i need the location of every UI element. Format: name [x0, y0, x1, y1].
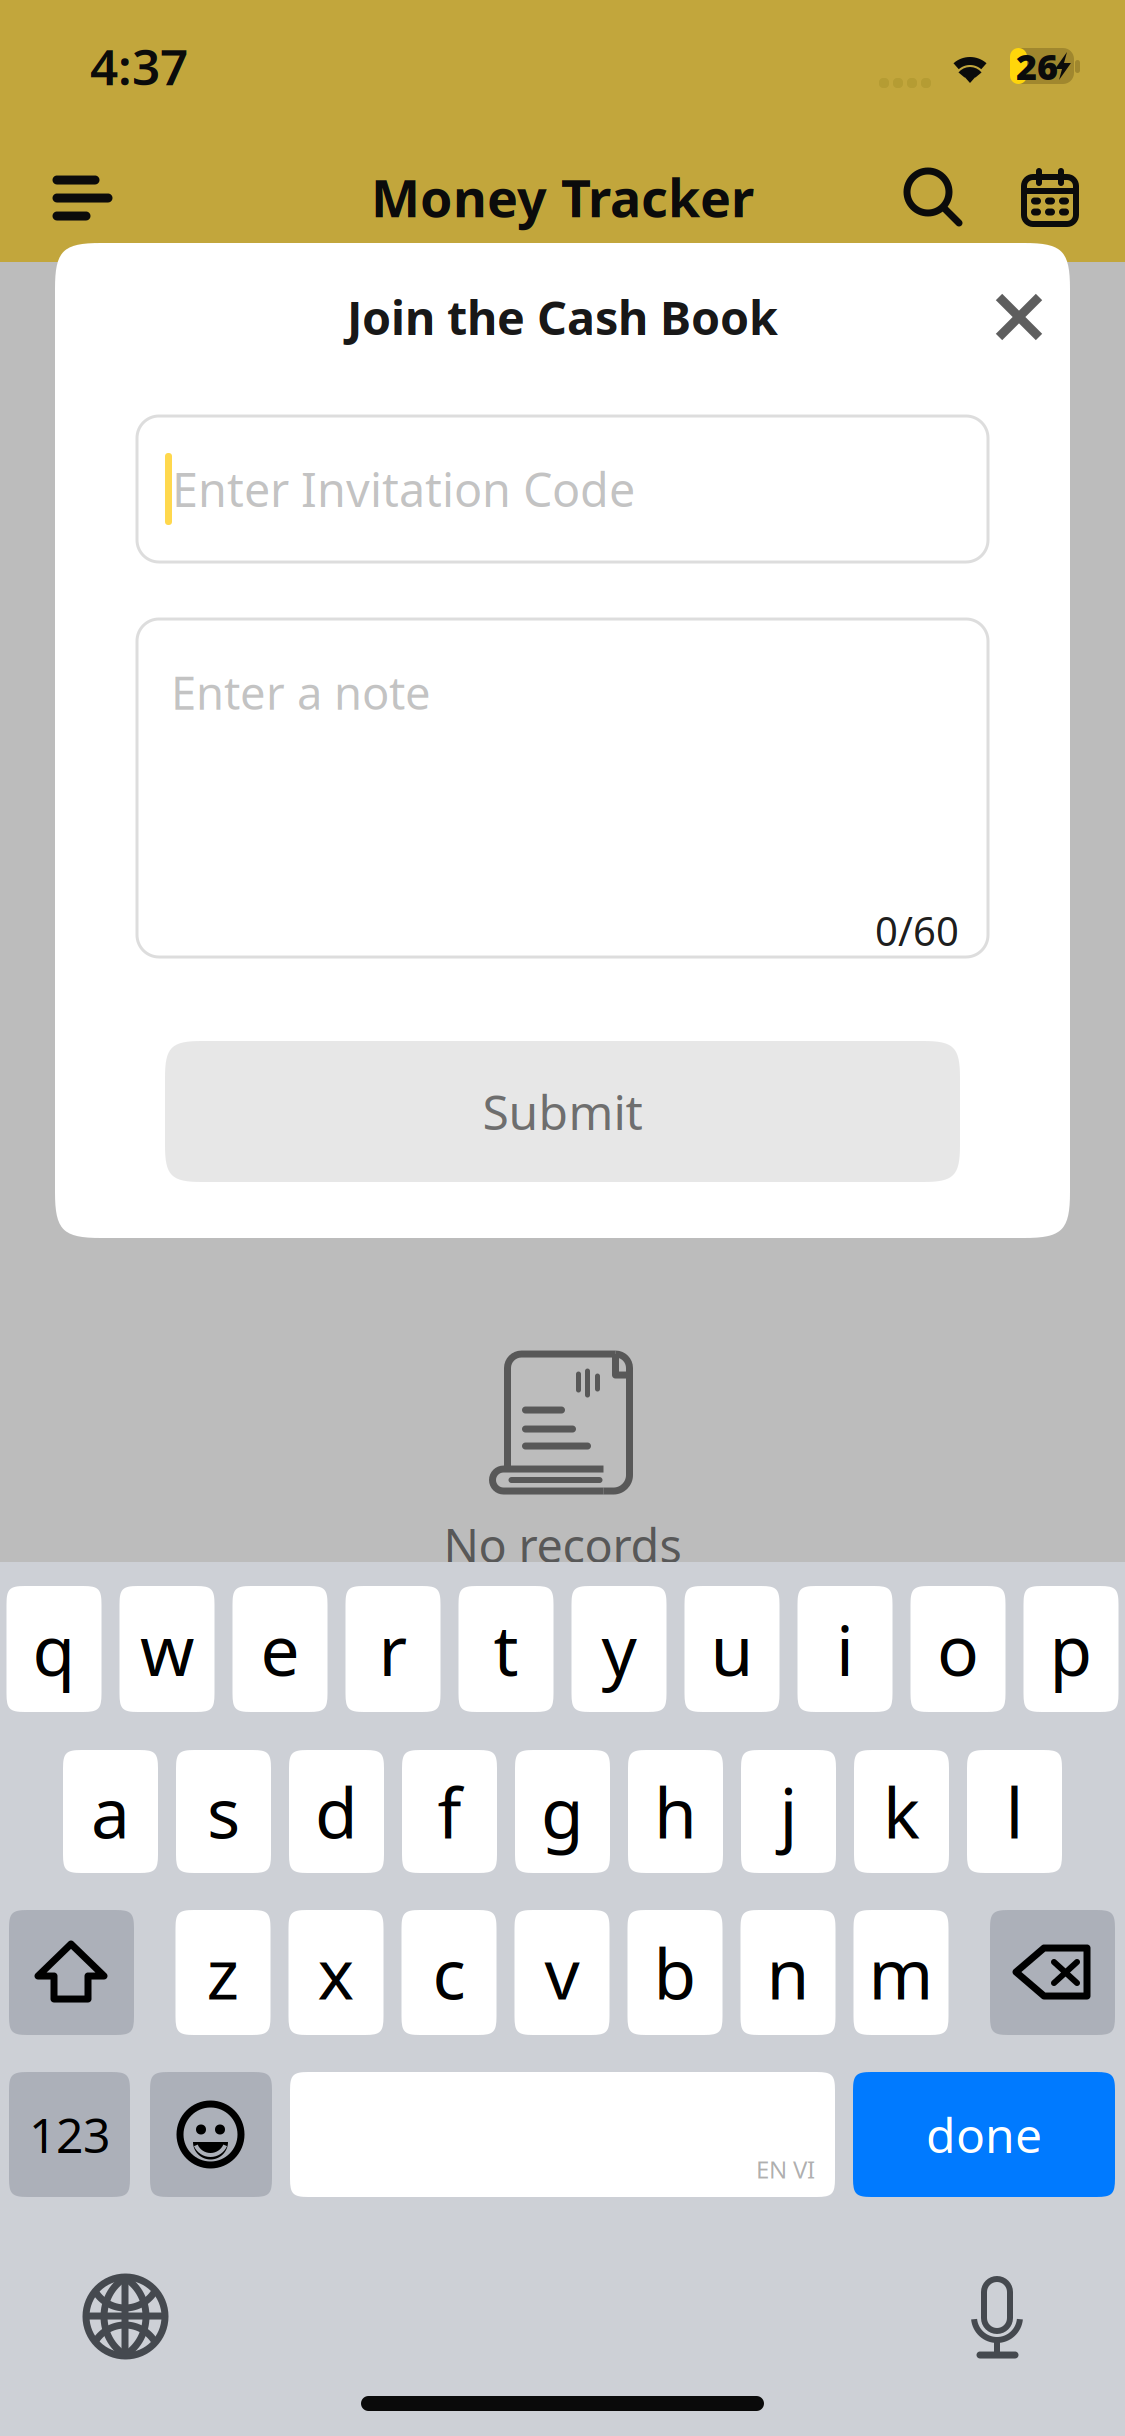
- button[interactable]: Delete: [990, 1910, 1115, 2035]
- staticText: c: [432, 1926, 465, 2019]
- staticText: No records: [443, 1514, 681, 1576]
- staticText: EN VI: [756, 2153, 815, 2185]
- staticText: 26: [1016, 42, 1058, 90]
- staticText: r: [378, 1603, 407, 1695]
- button[interactable]: g: [515, 1750, 610, 1873]
- button[interactable]: Shift: [9, 1910, 134, 2035]
- staticText: h: [654, 1765, 697, 1858]
- button[interactable]: b: [627, 1910, 722, 2035]
- staticText: d: [315, 1765, 358, 1858]
- staticText: f: [437, 1765, 461, 1858]
- button[interactable]: o: [910, 1586, 1005, 1712]
- button[interactable]: y: [571, 1586, 666, 1712]
- staticText: e: [260, 1603, 299, 1695]
- button[interactable]: d: [289, 1750, 384, 1873]
- button[interactable]: t: [458, 1586, 553, 1712]
- staticText: Money Tracker: [371, 162, 754, 232]
- staticText: g: [541, 1765, 584, 1858]
- staticText: o: [937, 1603, 979, 1695]
- staticText: x: [317, 1926, 354, 2019]
- staticText: p: [1049, 1603, 1092, 1695]
- staticText: n: [766, 1926, 809, 2019]
- button[interactable]: i: [797, 1586, 892, 1712]
- staticText: u: [710, 1603, 753, 1695]
- button[interactable]: q: [6, 1586, 101, 1712]
- button[interactable]: a: [63, 1750, 158, 1873]
- staticText: Submit: [482, 1080, 642, 1143]
- button[interactable]: Submit: [165, 1041, 960, 1182]
- button[interactable]: Search: [889, 142, 979, 252]
- button[interactable]: Space: [290, 2072, 835, 2197]
- staticText: b: [653, 1926, 696, 2019]
- button[interactable]: Menu: [34, 142, 130, 252]
- button[interactable]: r: [345, 1586, 440, 1712]
- button[interactable]: l: [967, 1750, 1062, 1873]
- staticText: k: [883, 1765, 920, 1858]
- button[interactable]: f: [402, 1750, 497, 1873]
- button[interactable]: k: [854, 1750, 949, 1873]
- button[interactable]: 123: [9, 2072, 130, 2197]
- staticText: 0/60: [875, 904, 959, 957]
- button[interactable]: Change keyboard: [76, 2267, 176, 2367]
- staticText: y: [601, 1603, 636, 1695]
- staticText: 4:37: [90, 33, 188, 99]
- staticText: q: [32, 1603, 75, 1695]
- button[interactable]: n: [740, 1910, 835, 2035]
- button[interactable]: Close: [974, 272, 1064, 362]
- staticText: s: [207, 1765, 240, 1858]
- button[interactable]: e: [232, 1586, 327, 1712]
- button[interactable]: x: [288, 1910, 383, 2035]
- button[interactable]: Calendar: [1005, 142, 1095, 252]
- button[interactable]: s: [176, 1750, 271, 1873]
- staticText: a: [91, 1765, 130, 1858]
- button[interactable]: Emoji: [150, 2072, 272, 2197]
- button[interactable]: m: [853, 1910, 948, 2035]
- button[interactable]: h: [628, 1750, 723, 1873]
- button[interactable]: Dictate: [947, 2267, 1047, 2367]
- staticText: t: [493, 1603, 518, 1695]
- staticText: 123: [29, 2103, 110, 2166]
- button[interactable]: v: [514, 1910, 609, 2035]
- staticText: i: [836, 1603, 854, 1695]
- staticText: Join the Cash Book: [347, 286, 778, 348]
- staticText: v: [544, 1926, 579, 2019]
- button[interactable]: u: [684, 1586, 779, 1712]
- staticText: m: [868, 1926, 933, 2019]
- button[interactable]: c: [401, 1910, 496, 2035]
- button[interactable]: j: [741, 1750, 836, 1873]
- button[interactable]: p: [1023, 1586, 1118, 1712]
- staticText: z: [206, 1926, 239, 2019]
- button[interactable]: done: [853, 2072, 1115, 2197]
- staticText: Enter Invitation Code: [172, 458, 635, 520]
- staticText: done: [926, 2103, 1042, 2166]
- button[interactable]: w: [119, 1586, 214, 1712]
- staticText: w: [140, 1603, 194, 1695]
- staticText: j: [779, 1765, 797, 1858]
- button[interactable]: z: [175, 1910, 270, 2035]
- staticText: l: [1005, 1765, 1023, 1858]
- staticText: Enter a note: [171, 662, 431, 722]
